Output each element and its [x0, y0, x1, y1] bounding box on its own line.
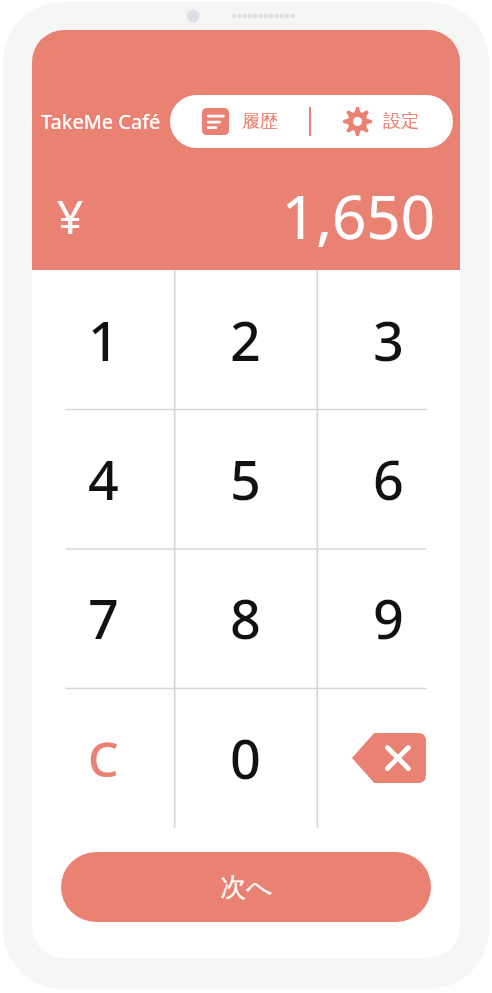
staticText: 7	[88, 581, 119, 655]
staticText: 5	[230, 442, 261, 516]
button[interactable]: 9	[317, 548, 460, 688]
staticText: C	[88, 726, 119, 791]
staticText: 8	[230, 581, 261, 655]
staticText: 4	[88, 442, 119, 516]
staticText: 3	[373, 303, 404, 377]
other: Settings	[343, 107, 372, 136]
staticText: 1,650	[84, 175, 435, 257]
staticText: ¥	[57, 185, 84, 248]
button[interactable]: 7	[32, 548, 174, 688]
staticText: 設定	[383, 110, 419, 133]
button[interactable]: 1	[32, 270, 174, 409]
button[interactable]: History	[170, 95, 309, 148]
button[interactable]: 0	[174, 688, 317, 828]
other: History	[202, 108, 229, 135]
button[interactable]: 6	[317, 409, 460, 548]
staticText: TakeMe Café	[41, 108, 161, 135]
button[interactable]: 4	[32, 409, 174, 548]
button[interactable]: 次へ	[61, 852, 431, 922]
button[interactable]: Settings	[311, 95, 450, 148]
button[interactable]: 2	[174, 270, 317, 409]
staticText: 6	[373, 442, 404, 516]
staticText: 次へ	[220, 871, 273, 904]
button[interactable]: Backspace	[317, 688, 460, 828]
staticText: 0	[230, 721, 261, 795]
staticText: 2	[230, 303, 261, 377]
button[interactable]: 3	[317, 270, 460, 409]
staticText: 1	[88, 303, 119, 377]
staticText: 履歴	[242, 110, 278, 133]
button[interactable]: C	[32, 688, 174, 828]
button[interactable]: 5	[174, 409, 317, 548]
staticText: 9	[373, 581, 404, 655]
button[interactable]: 8	[174, 548, 317, 688]
